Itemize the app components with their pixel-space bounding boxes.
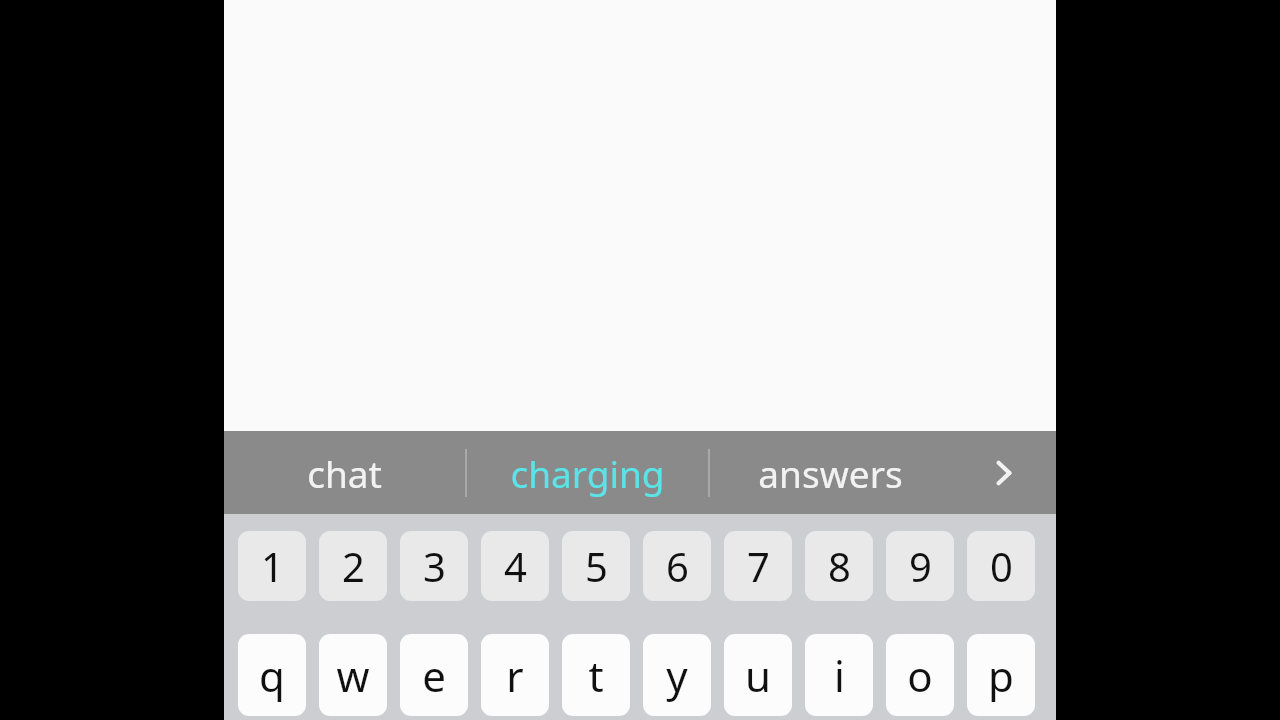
button[interactable]: o xyxy=(886,634,954,716)
staticText: 5 xyxy=(585,539,608,593)
button[interactable]: 6 xyxy=(643,531,711,601)
button[interactable]: y xyxy=(643,634,711,716)
staticText: answers xyxy=(758,448,903,498)
staticText: 8 xyxy=(828,539,851,593)
button[interactable]: t xyxy=(562,634,630,716)
button[interactable]: 9 xyxy=(886,531,954,601)
button[interactable]: answers xyxy=(710,431,951,514)
button[interactable]: r xyxy=(481,634,549,716)
button[interactable]: p xyxy=(967,634,1035,716)
staticText: p xyxy=(988,647,1014,704)
staticText: 7 xyxy=(747,539,770,593)
staticText: w xyxy=(336,647,370,704)
staticText: i xyxy=(834,647,845,704)
button[interactable]: chat xyxy=(224,431,465,514)
button[interactable]: 4 xyxy=(481,531,549,601)
staticText: o xyxy=(907,647,933,704)
staticText: e xyxy=(422,647,446,704)
staticText: 0 xyxy=(990,539,1013,593)
staticText: t xyxy=(588,647,604,704)
button[interactable]: 0 xyxy=(967,531,1035,601)
button[interactable]: e xyxy=(400,634,468,716)
button[interactable]: 2 xyxy=(319,531,387,601)
staticText: 4 xyxy=(504,539,527,593)
staticText: 9 xyxy=(909,539,932,593)
staticText: 6 xyxy=(666,539,689,593)
staticText: 3 xyxy=(423,539,446,593)
button[interactable]: More suggestions xyxy=(951,431,1056,514)
button[interactable]: charging xyxy=(467,431,708,514)
button[interactable]: q xyxy=(238,634,306,716)
button[interactable]: 8 xyxy=(805,531,873,601)
staticText: 2 xyxy=(342,539,365,593)
button[interactable]: 1 xyxy=(238,531,306,601)
staticText: y xyxy=(666,647,688,704)
button[interactable]: 5 xyxy=(562,531,630,601)
button[interactable]: 7 xyxy=(724,531,792,601)
staticText: r xyxy=(506,647,524,704)
button[interactable]: 3 xyxy=(400,531,468,601)
staticText: chat xyxy=(307,448,382,498)
staticText: u xyxy=(745,647,771,704)
staticText: q xyxy=(259,647,285,704)
button[interactable]: i xyxy=(805,634,873,716)
staticText: 1 xyxy=(261,539,284,593)
staticText: charging xyxy=(510,448,665,498)
button[interactable]: u xyxy=(724,634,792,716)
button[interactable]: w xyxy=(319,634,387,716)
